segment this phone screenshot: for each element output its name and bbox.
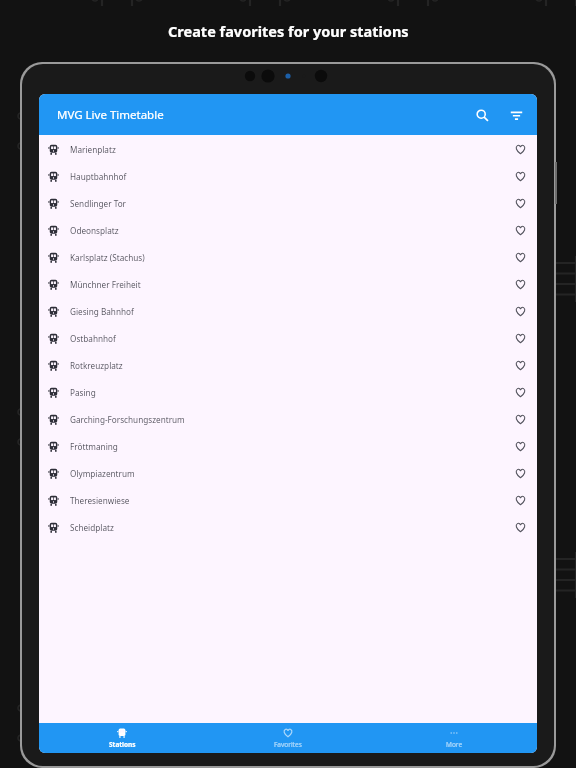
button[interactable]: Sendlinger Tor xyxy=(39,190,537,217)
button[interactable]: Olympiazentrum xyxy=(39,460,537,487)
staticText: Münchner Freiheit xyxy=(70,279,141,290)
button[interactable]: Scheidplatz xyxy=(39,514,537,541)
staticText: Favorites xyxy=(274,740,302,749)
button[interactable]: Garching-Forschungszentrum xyxy=(39,406,537,433)
staticText: Garching-Forschungszentrum xyxy=(70,414,185,425)
staticText: Karlsplatz (Stachus) xyxy=(70,252,145,263)
button[interactable]: Hauptbahnhof xyxy=(39,163,537,190)
button[interactable]: Pasing xyxy=(39,379,537,406)
button[interactable]: Add Hauptbahnhof to favorites xyxy=(507,163,534,190)
button[interactable]: Add Pasing to favorites xyxy=(507,379,534,406)
button[interactable]: Karlsplatz (Stachus) xyxy=(39,244,537,271)
staticText: MVG Live Timetable xyxy=(57,107,164,123)
button[interactable]: Add Ostbahnhof to favorites xyxy=(507,325,534,352)
staticText: Giesing Bahnhof xyxy=(70,306,134,317)
staticText: Marienplatz xyxy=(70,144,116,155)
button[interactable]: Favorites xyxy=(205,723,371,753)
button[interactable]: Rotkreuzplatz xyxy=(39,352,537,379)
button[interactable]: Add Theresienwiese to favorites xyxy=(507,487,534,514)
button[interactable]: Fröttmaning xyxy=(39,433,537,460)
button[interactable]: Add Scheidplatz to favorites xyxy=(507,514,534,541)
button[interactable]: Add Olympiazentrum to favorites xyxy=(507,460,534,487)
button[interactable]: Add Garching-Forschungszentrum to favori… xyxy=(507,406,534,433)
staticText: Odeonsplatz xyxy=(70,225,119,236)
button[interactable]: Ostbahnhof xyxy=(39,325,537,352)
button[interactable]: More xyxy=(371,723,537,753)
staticText: Sendlinger Tor xyxy=(70,198,126,209)
staticText: Olympiazentrum xyxy=(70,468,135,479)
button[interactable]: Marienplatz xyxy=(39,136,537,163)
button[interactable]: Giesing Bahnhof xyxy=(39,298,537,325)
button[interactable]: Add Karlsplatz (Stachus) to favorites xyxy=(507,244,534,271)
button[interactable]: Münchner Freiheit xyxy=(39,271,537,298)
button[interactable]: Add Marienplatz to favorites xyxy=(507,136,534,163)
staticText: Pasing xyxy=(70,387,96,398)
button[interactable]: Search xyxy=(465,98,499,132)
button[interactable]: Add Rotkreuzplatz to favorites xyxy=(507,352,534,379)
staticText: Scheidplatz xyxy=(70,522,114,533)
button[interactable]: Add Sendlinger Tor to favorites xyxy=(507,190,534,217)
staticText: Stations xyxy=(109,740,136,749)
staticText: Fröttmaning xyxy=(70,441,118,452)
staticText: Ostbahnhof xyxy=(70,333,116,344)
button[interactable]: Odeonsplatz xyxy=(39,217,537,244)
button[interactable]: Add Giesing Bahnhof to favorites xyxy=(507,298,534,325)
staticText: More xyxy=(446,740,463,749)
staticText: Hauptbahnhof xyxy=(70,171,127,182)
button[interactable]: Theresienwiese xyxy=(39,487,537,514)
button[interactable]: Add Fröttmaning to favorites xyxy=(507,433,534,460)
button[interactable]: Add Odeonsplatz to favorites xyxy=(507,217,534,244)
button[interactable]: Add Münchner Freiheit to favorites xyxy=(507,271,534,298)
staticText: Rotkreuzplatz xyxy=(70,360,123,371)
staticText: Theresienwiese xyxy=(70,495,130,506)
button[interactable]: Filter xyxy=(499,98,533,132)
staticText: Create favorites for your stations xyxy=(168,21,409,41)
button[interactable]: Stations xyxy=(39,723,205,753)
